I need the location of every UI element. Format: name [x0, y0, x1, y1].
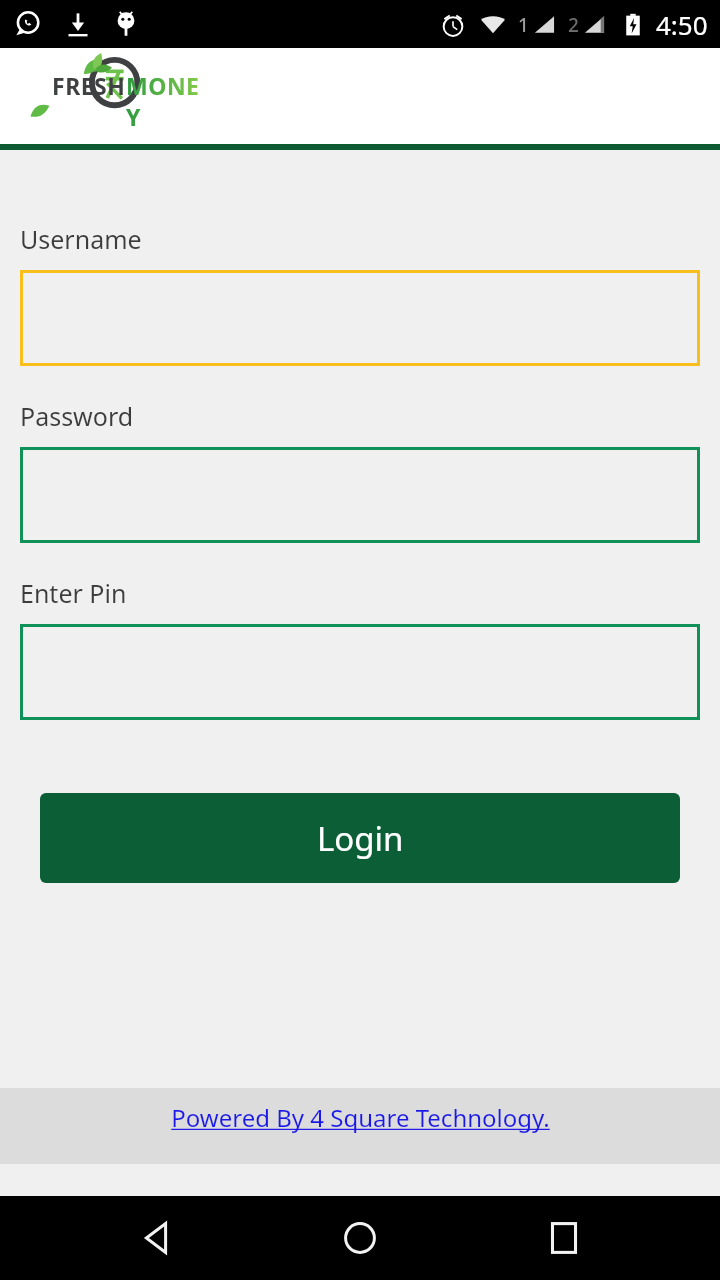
button[interactable]: Text input field: [20, 270, 700, 366]
button[interactable]: Text input field: [20, 447, 700, 543]
button[interactable]: Back: [108, 1196, 204, 1280]
staticText: Password: [20, 399, 134, 433]
staticText: FRESH: [52, 70, 126, 101]
staticText: 2: [568, 12, 579, 38]
staticText: Enter Pin: [20, 576, 127, 610]
staticText: Login: [317, 816, 404, 861]
staticText: MONEY: [126, 70, 210, 132]
button[interactable]: Home: [312, 1196, 408, 1280]
button[interactable]: Text input field: [20, 624, 700, 720]
staticText: 4:50: [656, 7, 708, 42]
button[interactable]: FreshMoney logo: [30, 54, 210, 138]
staticText: 1: [518, 12, 529, 38]
button[interactable]: Recent apps: [516, 1196, 612, 1280]
button[interactable]: Login: [40, 793, 680, 883]
button[interactable]: Powered By 4 Square Technology.: [168, 1101, 553, 1134]
staticText: Username: [20, 222, 142, 256]
